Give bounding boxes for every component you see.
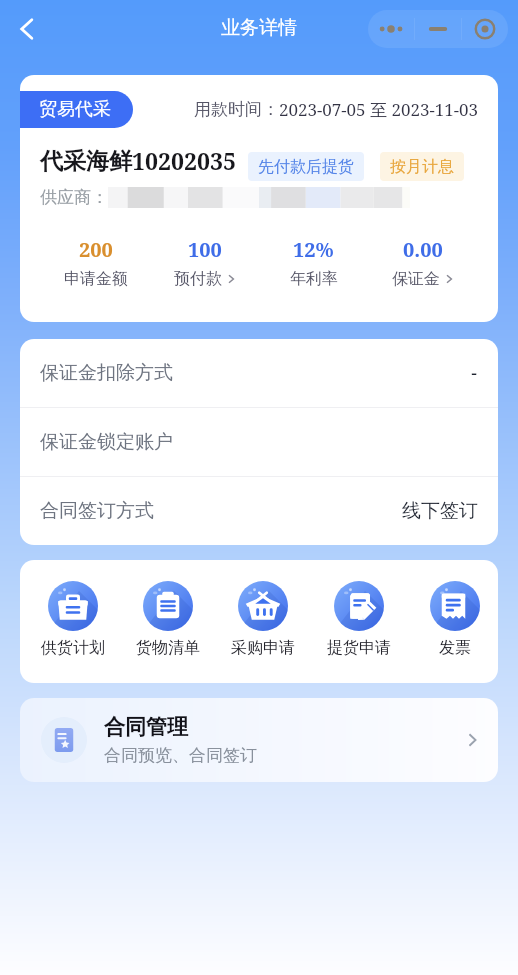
staticText: 预付款 [174, 269, 222, 289]
staticText: 100 [188, 236, 222, 263]
staticText: 10202035 [132, 145, 236, 176]
button[interactable]: 提货申请 [311, 581, 407, 658]
staticText: 供应商： [40, 187, 108, 208]
staticText: 12% [293, 236, 334, 263]
staticText: 合同预览、合同签订 [104, 745, 257, 766]
staticText: 保证金锁定账户 [40, 430, 173, 454]
staticText: 按月计息 [390, 157, 454, 177]
staticText: 用款时间： [194, 99, 279, 120]
button[interactable]: 0.00 [368, 236, 477, 289]
staticText: 发票 [439, 638, 471, 658]
staticText: 供货计划 [41, 638, 105, 658]
button[interactable]: 100 [150, 236, 259, 289]
staticText: 业务详情 [221, 16, 297, 40]
button[interactable]: Back [3, 5, 51, 53]
staticText: 提货申请 [327, 638, 391, 658]
staticText: 先付款后提货 [258, 157, 354, 177]
button[interactable]: Minimize [415, 10, 461, 48]
button[interactable]: 12% [259, 236, 368, 289]
staticText: 采购申请 [231, 638, 295, 658]
staticText: 贸易代采 [39, 98, 111, 121]
button[interactable]: 货物清单 [120, 581, 215, 658]
staticText: 200 [79, 236, 113, 263]
button[interactable]: 保证金扣除方式 [20, 339, 498, 408]
staticText: 代采海鲜 [40, 147, 132, 176]
staticText: 合同管理 [104, 714, 188, 740]
staticText: 线下签订 [402, 499, 478, 523]
staticText: 2023-07-05 至 2023-11-03 [279, 98, 478, 121]
staticText: 合同签订方式 [40, 499, 154, 523]
button[interactable]: 保证金锁定账户 [20, 408, 498, 477]
staticText: 保证金 [392, 269, 440, 289]
button[interactable]: 采购申请 [215, 581, 311, 658]
button[interactable]: 合同管理 [20, 698, 498, 782]
button[interactable]: Close [462, 10, 508, 48]
button[interactable]: 合同签订方式 [20, 477, 498, 545]
staticText: 保证金扣除方式 [40, 361, 173, 385]
staticText: 货物清单 [136, 638, 200, 658]
button[interactable]: 发票 [407, 581, 498, 658]
staticText: 0.00 [403, 236, 443, 263]
staticText: - [471, 360, 478, 386]
button[interactable]: 供货计划 [25, 581, 120, 658]
staticText: 申请金额 [64, 269, 128, 289]
button[interactable]: 200 [41, 236, 150, 289]
button[interactable]: More [368, 10, 414, 48]
staticText: 年利率 [290, 269, 338, 289]
